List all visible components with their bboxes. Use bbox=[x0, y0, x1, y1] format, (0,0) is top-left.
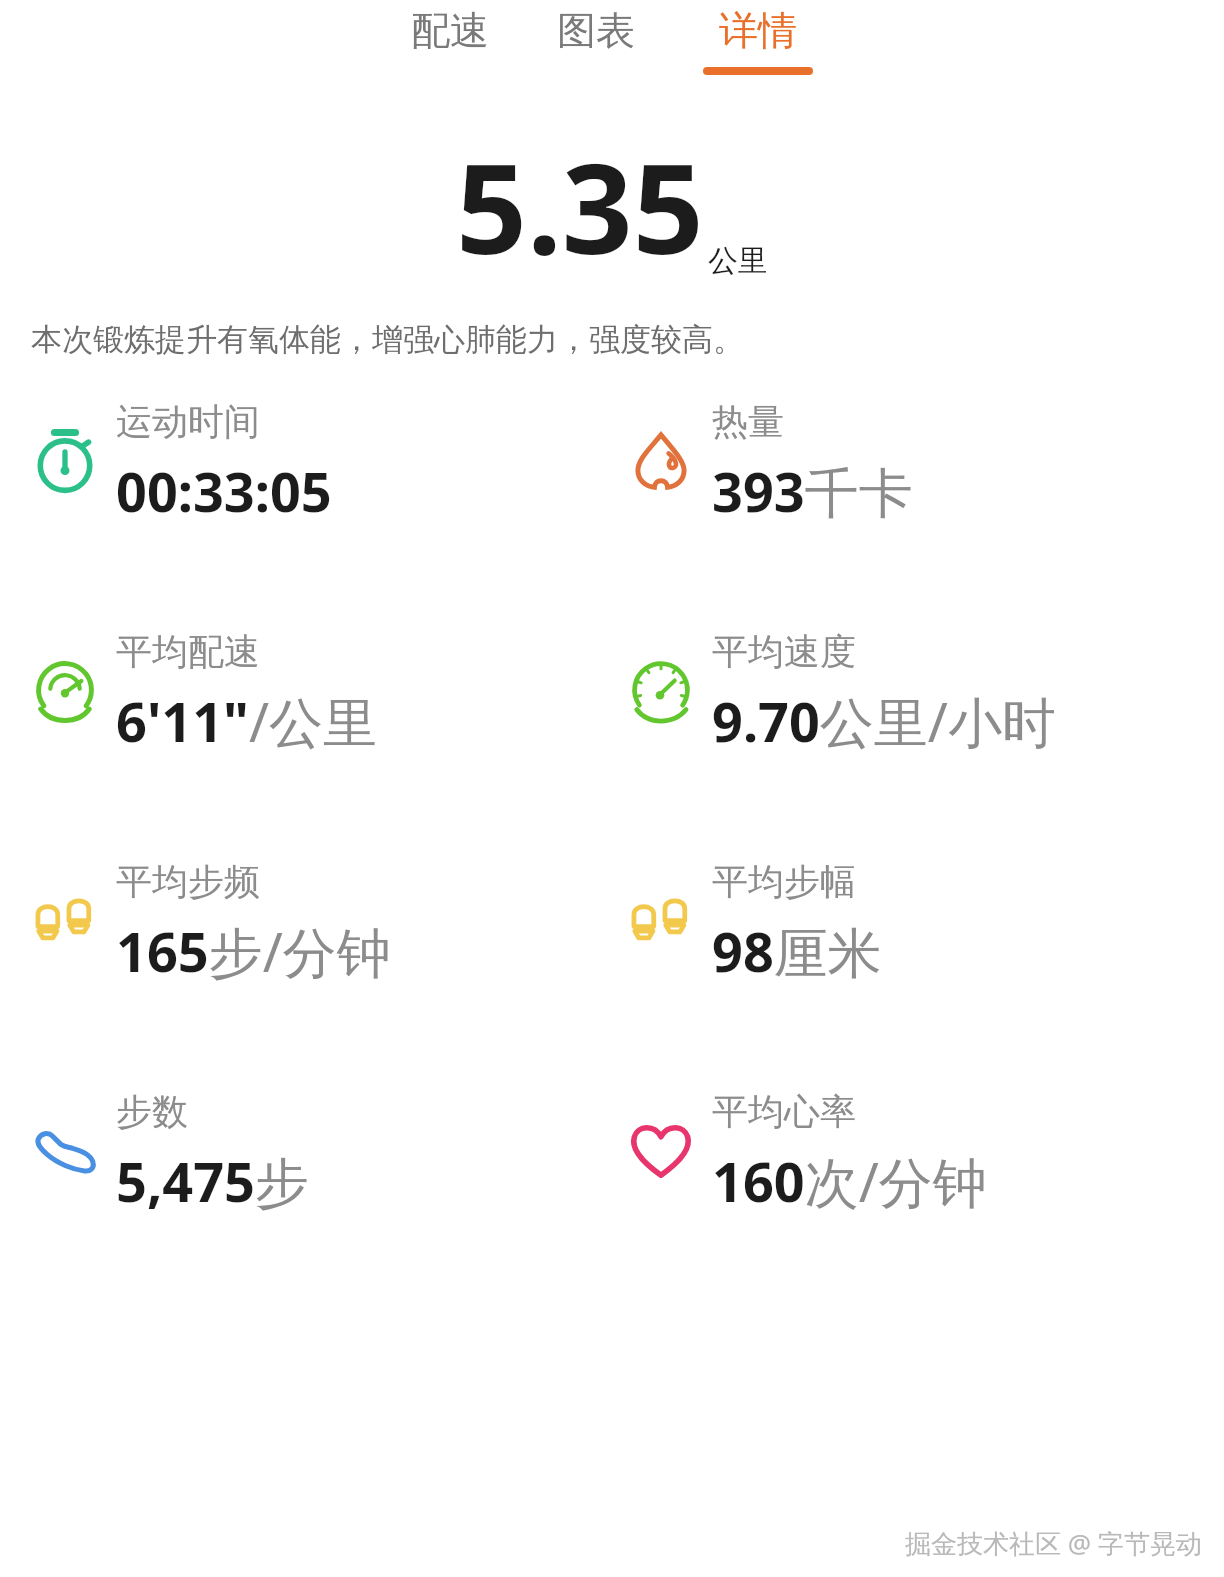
button[interactable]: Average cadence bbox=[0, 845, 612, 990]
button[interactable]: Steps bbox=[0, 1075, 612, 1220]
staticText: 平均速度 bbox=[712, 629, 856, 674]
staticText: 本次锻炼提升有氧体能，增强心肺能力，强度较高。 bbox=[31, 320, 744, 359]
staticText: 6'11"/公里 bbox=[116, 684, 377, 758]
staticText: 393千卡 bbox=[712, 454, 913, 528]
staticText: 步数 bbox=[116, 1089, 188, 1134]
staticText: 平均心率 bbox=[712, 1089, 856, 1134]
staticText: 5.35 bbox=[456, 121, 704, 290]
staticText: 公里 bbox=[708, 242, 768, 280]
button[interactable]: Average heart rate bbox=[612, 1075, 1224, 1220]
staticText: 图表 bbox=[557, 6, 635, 55]
other: Average pace bbox=[28, 653, 102, 727]
staticText: 160次/分钟 bbox=[712, 1144, 987, 1218]
staticText: 详情 bbox=[719, 6, 797, 55]
staticText: 运动时间 bbox=[116, 399, 260, 444]
other: Average cadence bbox=[28, 883, 102, 957]
staticText: 9.70公里/小时 bbox=[712, 684, 1056, 758]
staticText: 配速 bbox=[411, 6, 489, 55]
staticText: 平均步频 bbox=[116, 859, 260, 904]
button[interactable]: 图表 bbox=[549, 0, 643, 81]
staticText: 5,475步 bbox=[116, 1144, 309, 1218]
button[interactable]: 详情 bbox=[695, 0, 821, 81]
staticText: 98厘米 bbox=[712, 914, 882, 988]
button[interactable]: 配速 bbox=[403, 0, 497, 81]
button[interactable]: Workout time bbox=[0, 385, 612, 530]
staticText: 平均步幅 bbox=[712, 859, 856, 904]
button[interactable]: Calories bbox=[612, 385, 1224, 530]
other: Average stride bbox=[624, 883, 698, 957]
other: Workout time bbox=[28, 423, 102, 497]
button[interactable]: Average stride bbox=[612, 845, 1224, 990]
staticText: 00:33:05 bbox=[116, 454, 332, 528]
other: Average speed bbox=[624, 653, 698, 727]
button[interactable]: Average speed bbox=[612, 615, 1224, 760]
other: Steps bbox=[28, 1113, 102, 1187]
other: Average heart rate bbox=[624, 1113, 698, 1187]
other: Calories bbox=[624, 423, 698, 497]
button[interactable]: Average pace bbox=[0, 615, 612, 760]
staticText: 热量 bbox=[712, 399, 784, 444]
staticText: 掘金技术社区 @ 字节晃动 bbox=[905, 1525, 1202, 1561]
staticText: 165步/分钟 bbox=[116, 914, 391, 988]
staticText: 平均配速 bbox=[116, 629, 260, 674]
